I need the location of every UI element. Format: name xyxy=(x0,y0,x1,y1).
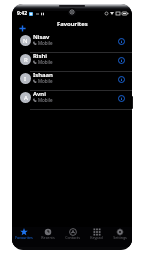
staticText: Settings xyxy=(113,235,127,240)
button[interactable]: I xyxy=(12,72,132,91)
button[interactable]: N xyxy=(12,34,132,53)
button[interactable]: A xyxy=(12,91,132,110)
staticText: R xyxy=(24,56,28,64)
button[interactable]: Settings xyxy=(108,227,132,247)
staticText: Mobile xyxy=(38,78,53,84)
staticText: Nisav xyxy=(33,33,50,41)
staticText: Recents xyxy=(41,235,55,240)
staticText: Favourites xyxy=(15,235,33,240)
staticText: A xyxy=(24,94,28,102)
staticText: Ishaan xyxy=(33,71,53,79)
button[interactable]: Contact info xyxy=(115,92,128,105)
staticText: Mobile xyxy=(38,97,53,103)
button[interactable]: R xyxy=(12,53,132,72)
button[interactable]: Contact info xyxy=(115,54,128,67)
staticText: Avni xyxy=(33,90,46,98)
button[interactable]: Contact info xyxy=(115,73,128,86)
button[interactable]: Contacts xyxy=(60,227,84,247)
staticText: Contacts xyxy=(65,235,80,240)
staticText: Rishi xyxy=(33,52,48,60)
button[interactable]: Keypad xyxy=(84,227,108,247)
staticText: N xyxy=(23,37,28,45)
staticText: Mobile xyxy=(38,59,53,65)
staticText: Keypad xyxy=(90,235,103,240)
button[interactable]: Add favourite xyxy=(16,22,28,34)
button[interactable]: Favourites xyxy=(12,227,36,247)
button[interactable]: Contact info xyxy=(115,35,128,48)
staticText: Favourites xyxy=(57,20,88,28)
button[interactable]: Recents xyxy=(36,227,60,247)
staticText: I xyxy=(24,75,27,83)
staticText: 9:42 xyxy=(17,10,27,17)
staticText: Mobile xyxy=(38,40,53,46)
